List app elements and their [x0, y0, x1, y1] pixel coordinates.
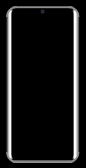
button[interactable]: Phone device preview	[0, 0, 86, 168]
